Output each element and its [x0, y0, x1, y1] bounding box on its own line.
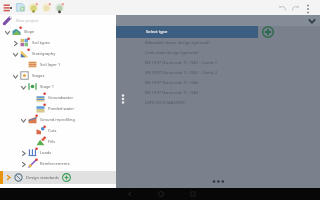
button[interactable]: Soil types	[0, 37, 116, 48]
button[interactable]: Slope	[0, 26, 116, 37]
button[interactable]: Limit state design (general)	[116, 48, 320, 58]
staticText: Loads	[40, 150, 52, 155]
button[interactable]: Tool 2	[27, 1, 40, 14]
button[interactable]: Reinforcements	[0, 158, 116, 169]
button[interactable]	[116, 15, 320, 26]
staticText: Limit state design (general)	[145, 50, 199, 56]
button[interactable]: Panel options	[117, 93, 128, 104]
staticText: Stage 1	[40, 84, 54, 89]
button[interactable]: Home	[154, 188, 167, 200]
button[interactable]: EN 1997 (Eurocode 7) - DA2	[116, 78, 320, 88]
button[interactable]: Cuts	[0, 125, 116, 136]
staticText: EN 1997 (Eurocode 7) - DA1 - Comb.2	[145, 70, 218, 76]
button[interactable]: Ground reprofiling	[0, 114, 116, 125]
button[interactable]: EN 1997 (Eurocode 7) - DA3	[116, 88, 320, 98]
button[interactable]: Stages	[0, 70, 116, 81]
staticText: Slope	[24, 29, 35, 34]
button[interactable]: Tool 4	[53, 1, 66, 14]
staticText: Groundwater	[48, 95, 74, 100]
button[interactable]: Allowable stress design (general)	[116, 38, 320, 48]
staticText: Ponded water	[48, 106, 75, 111]
button[interactable]: Design standards	[0, 171, 116, 184]
button[interactable]: EN 1997 (Eurocode 7) - DA1 - Comb.1	[116, 58, 320, 68]
button[interactable]: Fills	[0, 136, 116, 147]
staticText: Design standards	[26, 175, 59, 180]
button[interactable]: Redo	[289, 1, 301, 15]
staticText: EN 1997 (Eurocode 7) - DA2	[145, 80, 199, 86]
staticText: Stratigraphy	[32, 51, 56, 56]
staticText: EN 1997 (Eurocode 7) - DA3	[145, 90, 199, 96]
button[interactable]: Ponded water	[0, 103, 116, 114]
staticText: Soil layer 1	[40, 62, 61, 67]
button[interactable]: LRFD 2012 (AASHTO)	[116, 98, 320, 108]
staticText: Ground reprofiling	[40, 117, 76, 122]
button[interactable]: Recents	[186, 188, 199, 200]
button[interactable]: Undo	[276, 1, 288, 15]
button[interactable]: Tool 1	[14, 1, 27, 14]
button[interactable]: Menu	[1, 1, 14, 14]
button[interactable]: Tool 3	[40, 1, 53, 14]
staticText: Stages	[32, 73, 45, 78]
button[interactable]: Stage 1	[0, 81, 116, 92]
button[interactable]: EN 1997 (Eurocode 7) - DA1 - Comb.2	[116, 68, 320, 78]
button[interactable]: More options	[302, 1, 313, 15]
button[interactable]: Loads	[0, 147, 116, 158]
button[interactable]: Back	[123, 188, 136, 200]
button[interactable]: Select type	[116, 26, 258, 38]
button[interactable]: Groundwater	[0, 92, 116, 103]
staticText: LRFD 2012 (AASHTO)	[145, 100, 186, 106]
button[interactable]: New project	[0, 15, 116, 26]
button[interactable]: Add design standard	[61, 172, 72, 183]
staticText: Reinforcements	[40, 161, 70, 166]
button[interactable]: Stratigraphy	[0, 48, 116, 59]
staticText: New project	[16, 18, 39, 23]
staticText: Allowable stress design (general)	[145, 40, 210, 46]
staticText: Cuts	[48, 128, 57, 133]
staticText: Fills	[48, 139, 56, 144]
staticText: Soil types	[32, 40, 50, 45]
staticText: Select type	[146, 29, 168, 35]
button[interactable]: Soil layer 1	[0, 59, 116, 70]
staticText: EN 1997 (Eurocode 7) - DA1 - Comb.1	[145, 60, 218, 66]
button[interactable]: Add type	[261, 26, 274, 38]
